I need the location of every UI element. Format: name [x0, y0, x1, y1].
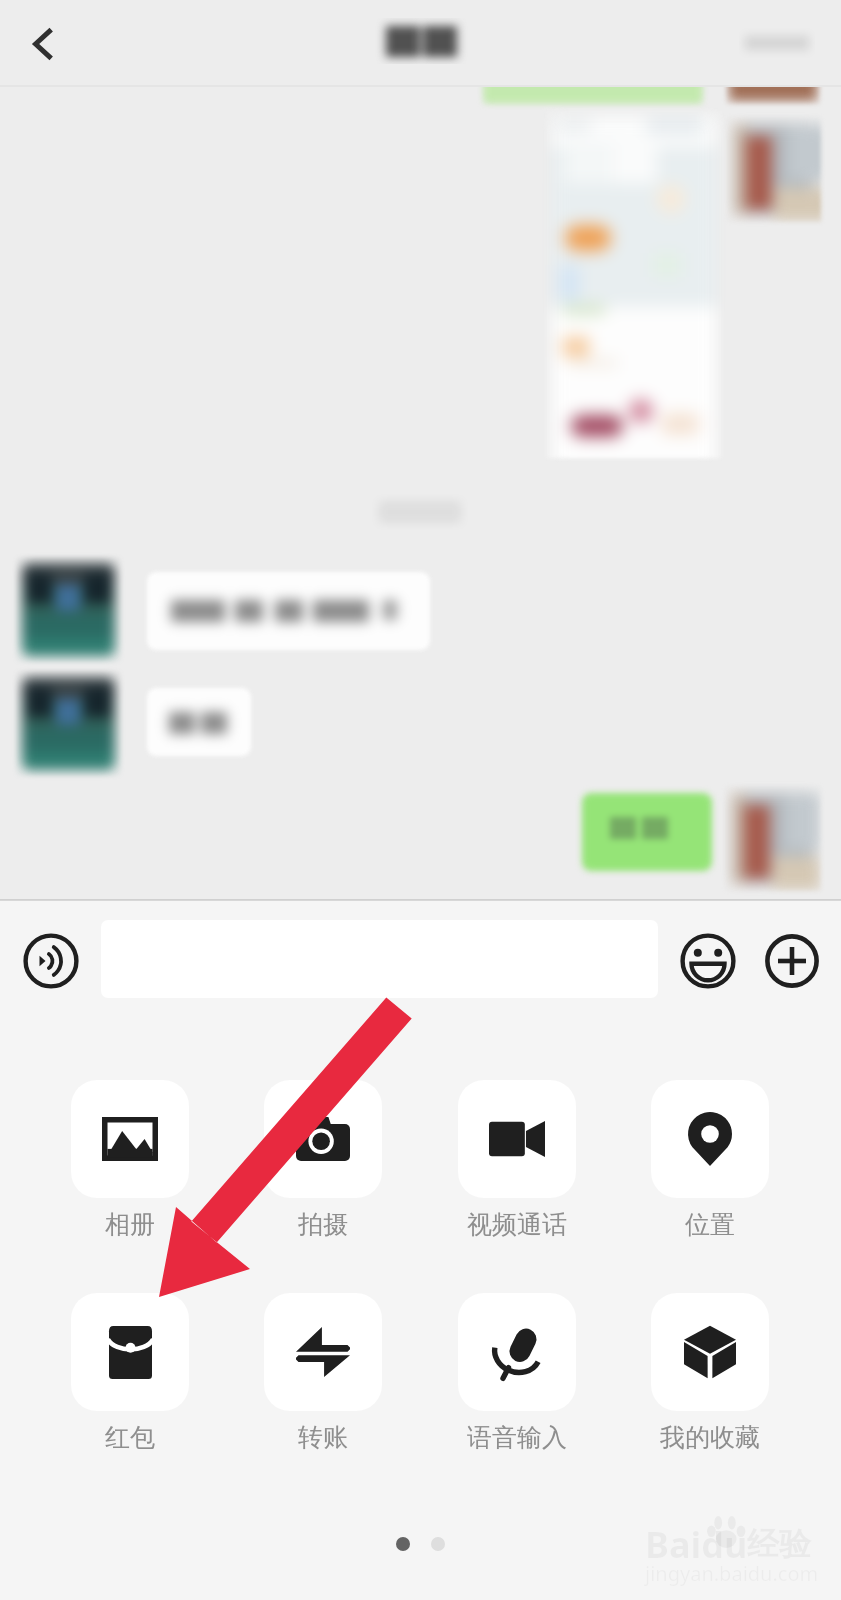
- staticText: 语音输入: [467, 1422, 567, 1453]
- staticText: 转账: [298, 1422, 348, 1453]
- staticText: 相册: [105, 1209, 155, 1240]
- button[interactable]: 拍摄: [264, 1080, 382, 1240]
- staticText: Baidu: [645, 1520, 748, 1569]
- button[interactable]: Back: [6, 0, 82, 87]
- button[interactable]: Emoji: [680, 933, 736, 989]
- button[interactable]: 我的收藏: [651, 1293, 769, 1453]
- button[interactable]: 位置: [651, 1080, 769, 1240]
- staticText: 经验: [747, 1524, 811, 1564]
- button[interactable]: 视频通话: [458, 1080, 576, 1240]
- staticText: 拍摄: [298, 1209, 348, 1240]
- button[interactable]: 相册: [71, 1080, 189, 1240]
- staticText: 位置: [685, 1209, 735, 1240]
- staticText: 视频通话: [467, 1209, 567, 1240]
- staticText: 红包: [105, 1422, 155, 1453]
- button[interactable]: More options: [764, 933, 820, 989]
- button[interactable]: 语音输入: [458, 1293, 576, 1453]
- staticText: 我的收藏: [660, 1422, 760, 1453]
- button[interactable]: Voice message: [23, 933, 79, 989]
- button[interactable]: 转账: [264, 1293, 382, 1453]
- button[interactable]: 红包: [71, 1293, 189, 1453]
